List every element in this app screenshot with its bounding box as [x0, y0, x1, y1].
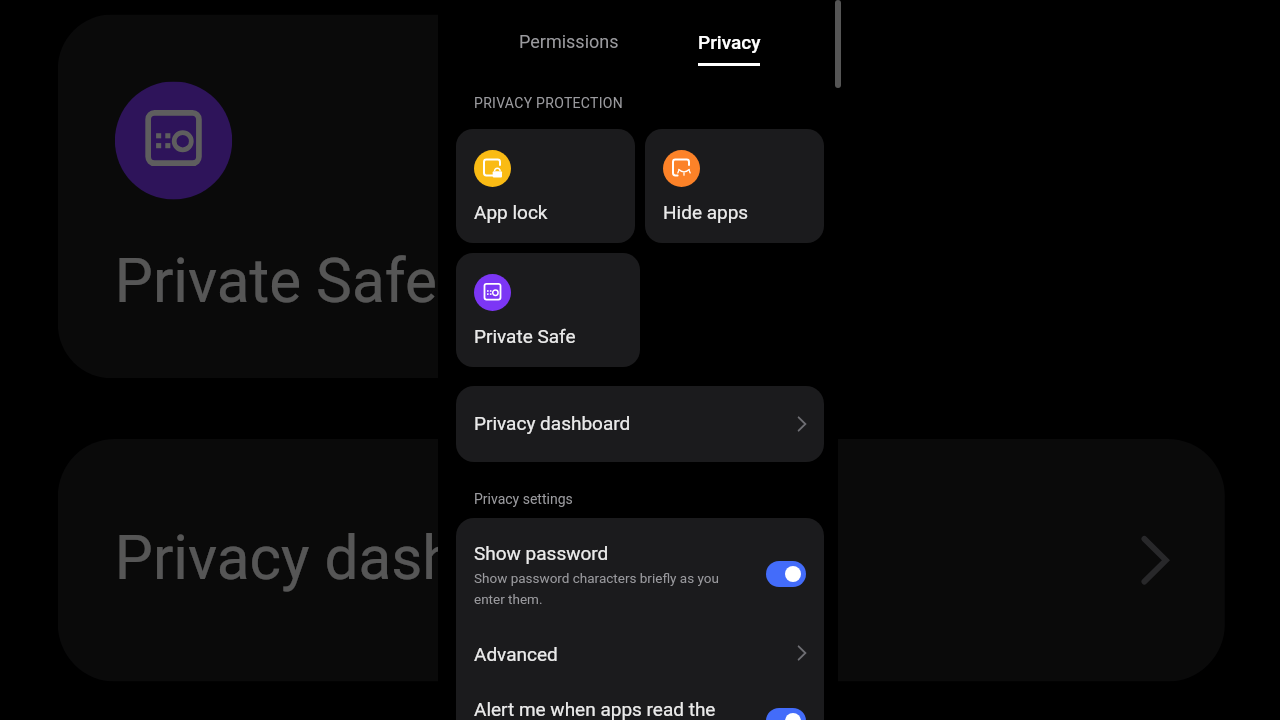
- staticText: Privacy dashboard: [474, 412, 631, 434]
- button[interactable]: App lock: [456, 129, 635, 243]
- button[interactable]: Private Safe: [456, 253, 640, 367]
- staticText: Privacy settings: [474, 491, 573, 507]
- staticText: Hide apps: [663, 201, 749, 223]
- staticText: Private Safe: [115, 244, 438, 314]
- staticText: PRIVACY PROTECTION: [474, 95, 624, 111]
- staticText: Advanced: [474, 643, 558, 665]
- staticText: Show password: [474, 542, 609, 564]
- button[interactable]: Hide apps: [645, 129, 824, 243]
- staticText: Permissions: [519, 31, 619, 52]
- button[interactable]: Privacy dashboard: [456, 386, 824, 462]
- staticText: Privacy: [698, 31, 761, 53]
- button[interactable]: Privacy: [676, 10, 782, 76]
- button[interactable]: Show password: [456, 518, 824, 628]
- staticText: Private Safe: [474, 325, 576, 347]
- staticText: Show password characters briefly as you …: [474, 570, 732, 607]
- staticText: Alert me when apps read the clipboard: [474, 698, 732, 720]
- button[interactable]: Show password: [766, 561, 806, 587]
- staticText: Privacy dashboard: [115, 522, 613, 592]
- button[interactable]: Alert me when apps read the clipboard: [766, 708, 806, 720]
- staticText: App lock: [474, 201, 548, 223]
- button[interactable]: Alert me when apps read the clipboard: [456, 680, 824, 720]
- button[interactable]: Advanced: [456, 625, 824, 679]
- button[interactable]: Permissions: [506, 10, 632, 66]
